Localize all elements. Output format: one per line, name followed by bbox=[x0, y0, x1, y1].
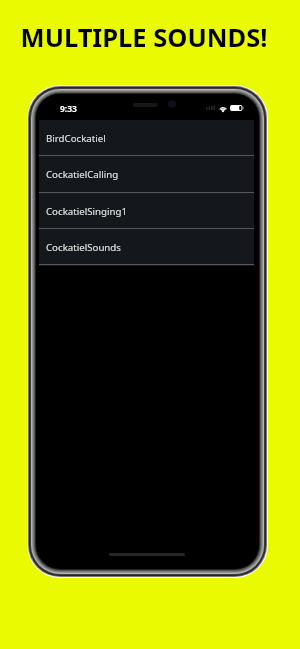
staticText: BirdCockatiel bbox=[46, 132, 106, 145]
staticText: CockatielCalling bbox=[46, 168, 119, 181]
button[interactable]: CockatielSinging1 bbox=[39, 193, 254, 230]
staticText: 9:33 bbox=[60, 103, 77, 115]
staticText: MULTIPLE SOUNDS! bbox=[0, 20, 294, 55]
button[interactable]: CockatielCalling bbox=[39, 156, 254, 193]
staticText: CockatielSinging1 bbox=[46, 205, 127, 218]
other: Cellular signal bbox=[206, 105, 216, 110]
staticText: CockatielSounds bbox=[46, 241, 121, 254]
button[interactable]: BirdCockatiel bbox=[39, 120, 254, 157]
other: Wi-Fi bbox=[219, 105, 227, 112]
other: Battery bbox=[230, 105, 244, 111]
button[interactable]: CockatielSounds bbox=[39, 229, 254, 266]
